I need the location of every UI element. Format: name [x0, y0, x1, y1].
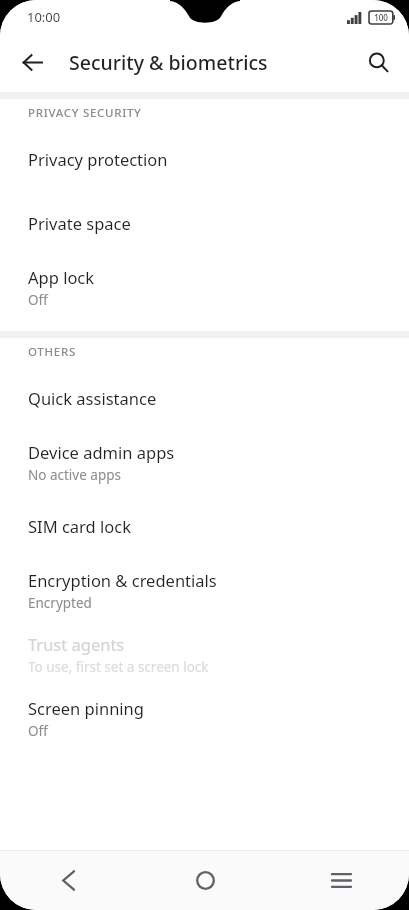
button[interactable]: Private space — [0, 191, 409, 255]
staticText: PRIVACY SECURITY — [28, 105, 142, 121]
staticText: Quick assistance — [28, 387, 157, 409]
button[interactable]: Recent apps — [273, 851, 409, 910]
staticText: Privacy protection — [28, 148, 168, 170]
staticText: Off — [28, 722, 48, 740]
button[interactable]: Device admin apps — [0, 430, 409, 494]
staticText: App lock — [28, 266, 95, 288]
staticText: Encrypted — [28, 594, 92, 612]
staticText: SIM card lock — [28, 515, 131, 537]
button[interactable]: Search — [358, 42, 398, 82]
staticText: Trust agents — [28, 633, 125, 655]
staticText: Private space — [28, 212, 131, 234]
button[interactable]: SIM card lock — [0, 494, 409, 558]
button[interactable]: Back — [0, 851, 137, 910]
staticText: Security & biometrics — [69, 49, 268, 76]
button[interactable]: Home — [137, 851, 273, 910]
button[interactable]: Trust agents — [0, 622, 409, 686]
staticText: OTHERS — [28, 344, 76, 360]
button[interactable]: Back — [12, 42, 52, 82]
button[interactable]: Privacy protection — [0, 127, 409, 191]
button[interactable]: Quick assistance — [0, 366, 409, 430]
button[interactable]: Screen pinning — [0, 686, 409, 750]
staticText: Screen pinning — [28, 697, 144, 719]
button[interactable]: App lock — [0, 255, 409, 319]
staticText: 10:00 — [27, 8, 61, 26]
staticText: Off — [28, 291, 48, 309]
staticText: 100 — [374, 12, 388, 23]
button[interactable]: Encryption & credentials — [0, 558, 409, 622]
staticText: Device admin apps — [28, 441, 175, 463]
staticText: To use, first set a screen lock — [28, 658, 209, 676]
staticText: Encryption & credentials — [28, 569, 217, 591]
staticText: No active apps — [28, 466, 121, 484]
